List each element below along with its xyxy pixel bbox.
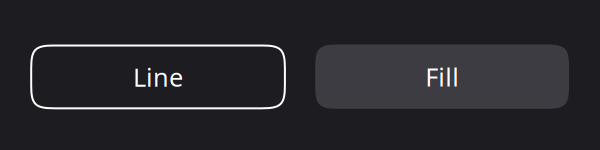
button[interactable]: Fill (315, 44, 569, 109)
button[interactable]: Line (30, 44, 286, 109)
staticText: Line (133, 60, 183, 94)
staticText: Fill (425, 60, 459, 93)
